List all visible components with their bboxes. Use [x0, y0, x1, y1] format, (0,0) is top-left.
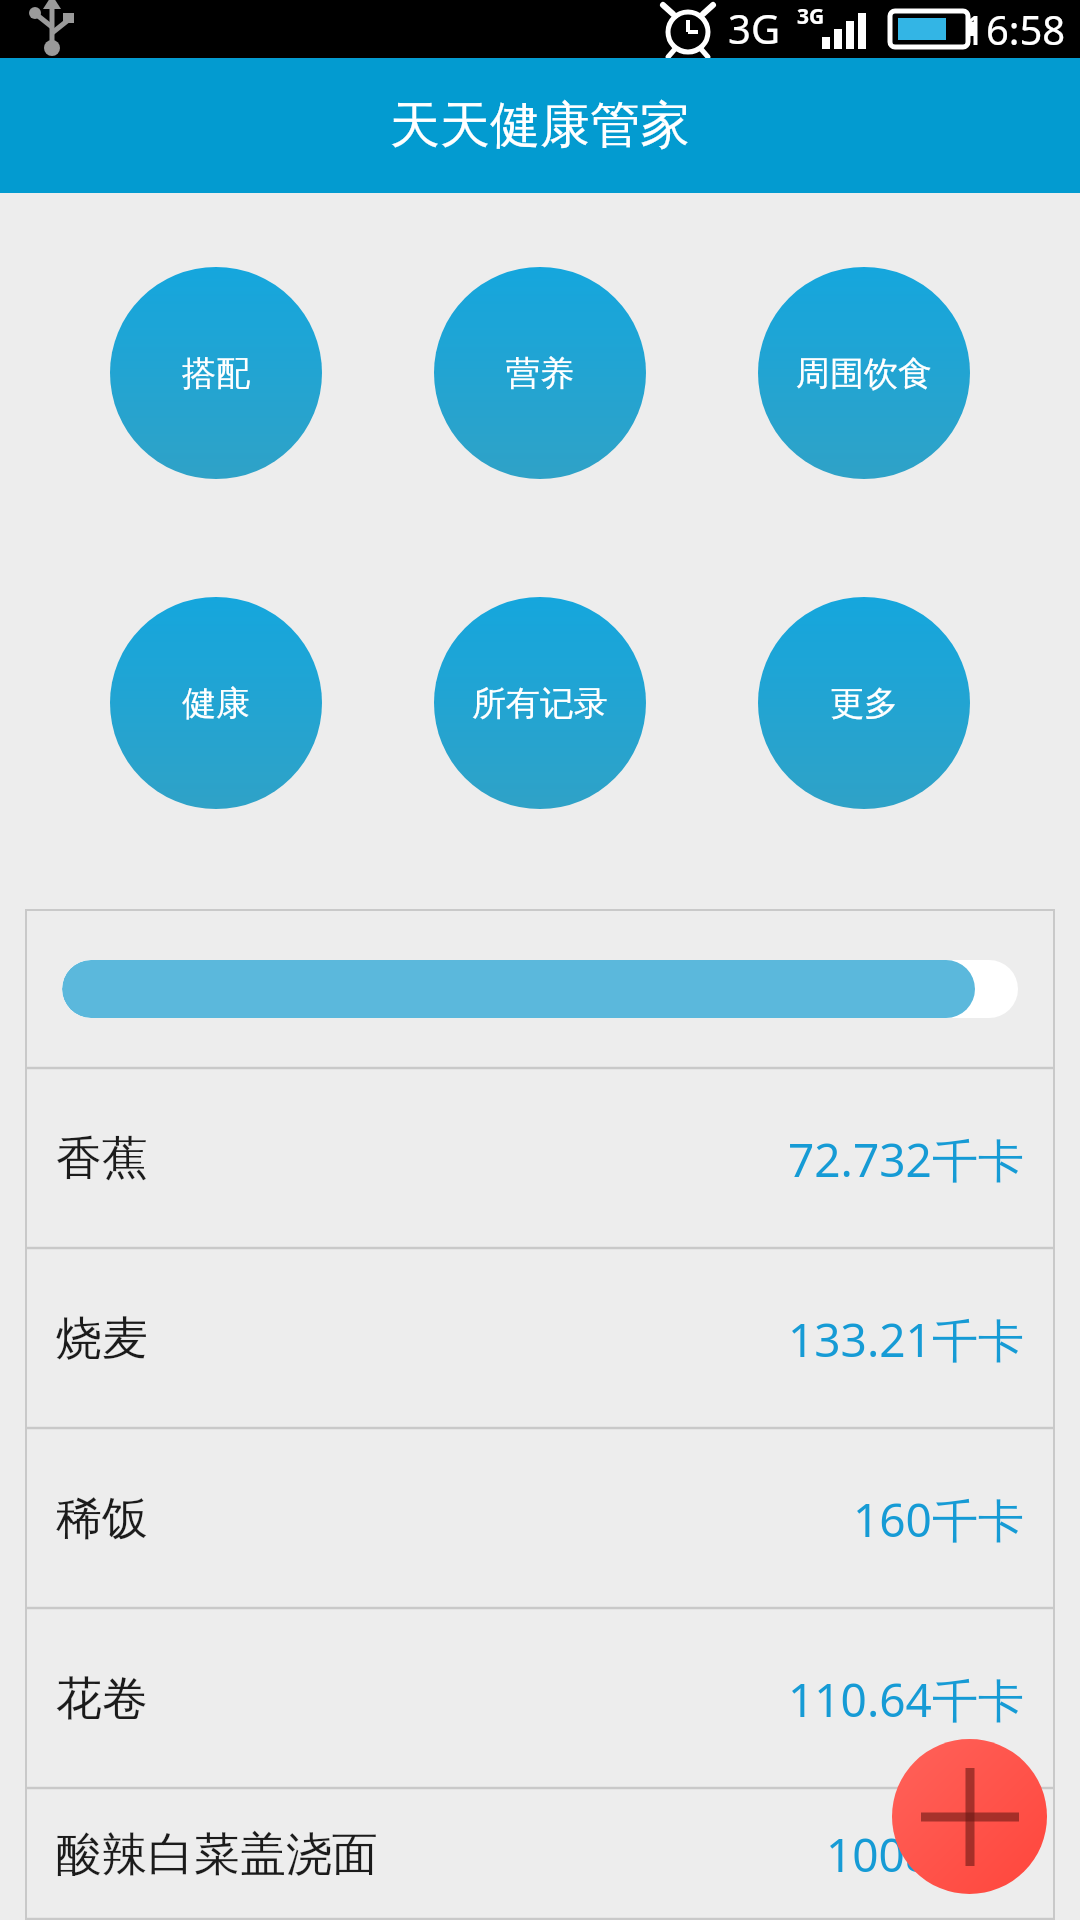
- button[interactable]: 更多: [758, 597, 970, 809]
- button[interactable]: 酸辣白菜盖浇面: [0, 1789, 1080, 1920]
- staticText: 烧麦: [56, 1310, 788, 1368]
- staticText: 香蕉: [56, 1130, 788, 1188]
- staticText: 周围饮食: [796, 352, 932, 395]
- staticText: 所有记录: [472, 682, 608, 725]
- staticText: 稀饭: [56, 1490, 853, 1548]
- staticText: 16:58: [963, 2, 1066, 56]
- staticText: 酸辣白菜盖浇面: [56, 1826, 826, 1884]
- button[interactable]: 营养: [434, 267, 646, 479]
- staticText: 天天健康管家: [390, 94, 690, 157]
- staticText: 110.64千卡: [788, 1668, 1024, 1731]
- staticText: 花卷: [56, 1670, 788, 1728]
- staticText: 更多: [830, 682, 898, 725]
- staticText: 133.21千卡: [788, 1308, 1024, 1371]
- staticText: 3G: [797, 2, 825, 31]
- button[interactable]: 烧麦: [0, 1249, 1080, 1429]
- staticText: 搭配: [182, 352, 250, 395]
- staticText: 1008千卡: [826, 1823, 1024, 1886]
- button[interactable]: 花卷: [0, 1609, 1080, 1789]
- button[interactable]: 香蕉: [0, 1069, 1080, 1249]
- button[interactable]: 稀饭: [0, 1429, 1080, 1609]
- staticText: 健康: [182, 682, 250, 725]
- staticText: 营养: [506, 352, 574, 395]
- button[interactable]: 所有记录: [434, 597, 646, 809]
- staticText: 3G: [728, 1, 780, 55]
- staticText: 72.732千卡: [788, 1128, 1024, 1191]
- button[interactable]: [62, 960, 1018, 1018]
- button[interactable]: Add food record: [892, 1739, 1047, 1894]
- button[interactable]: 健康: [110, 597, 322, 809]
- button[interactable]: 搭配: [110, 267, 322, 479]
- button[interactable]: 周围饮食: [758, 267, 970, 479]
- staticText: 160千卡: [853, 1488, 1024, 1551]
